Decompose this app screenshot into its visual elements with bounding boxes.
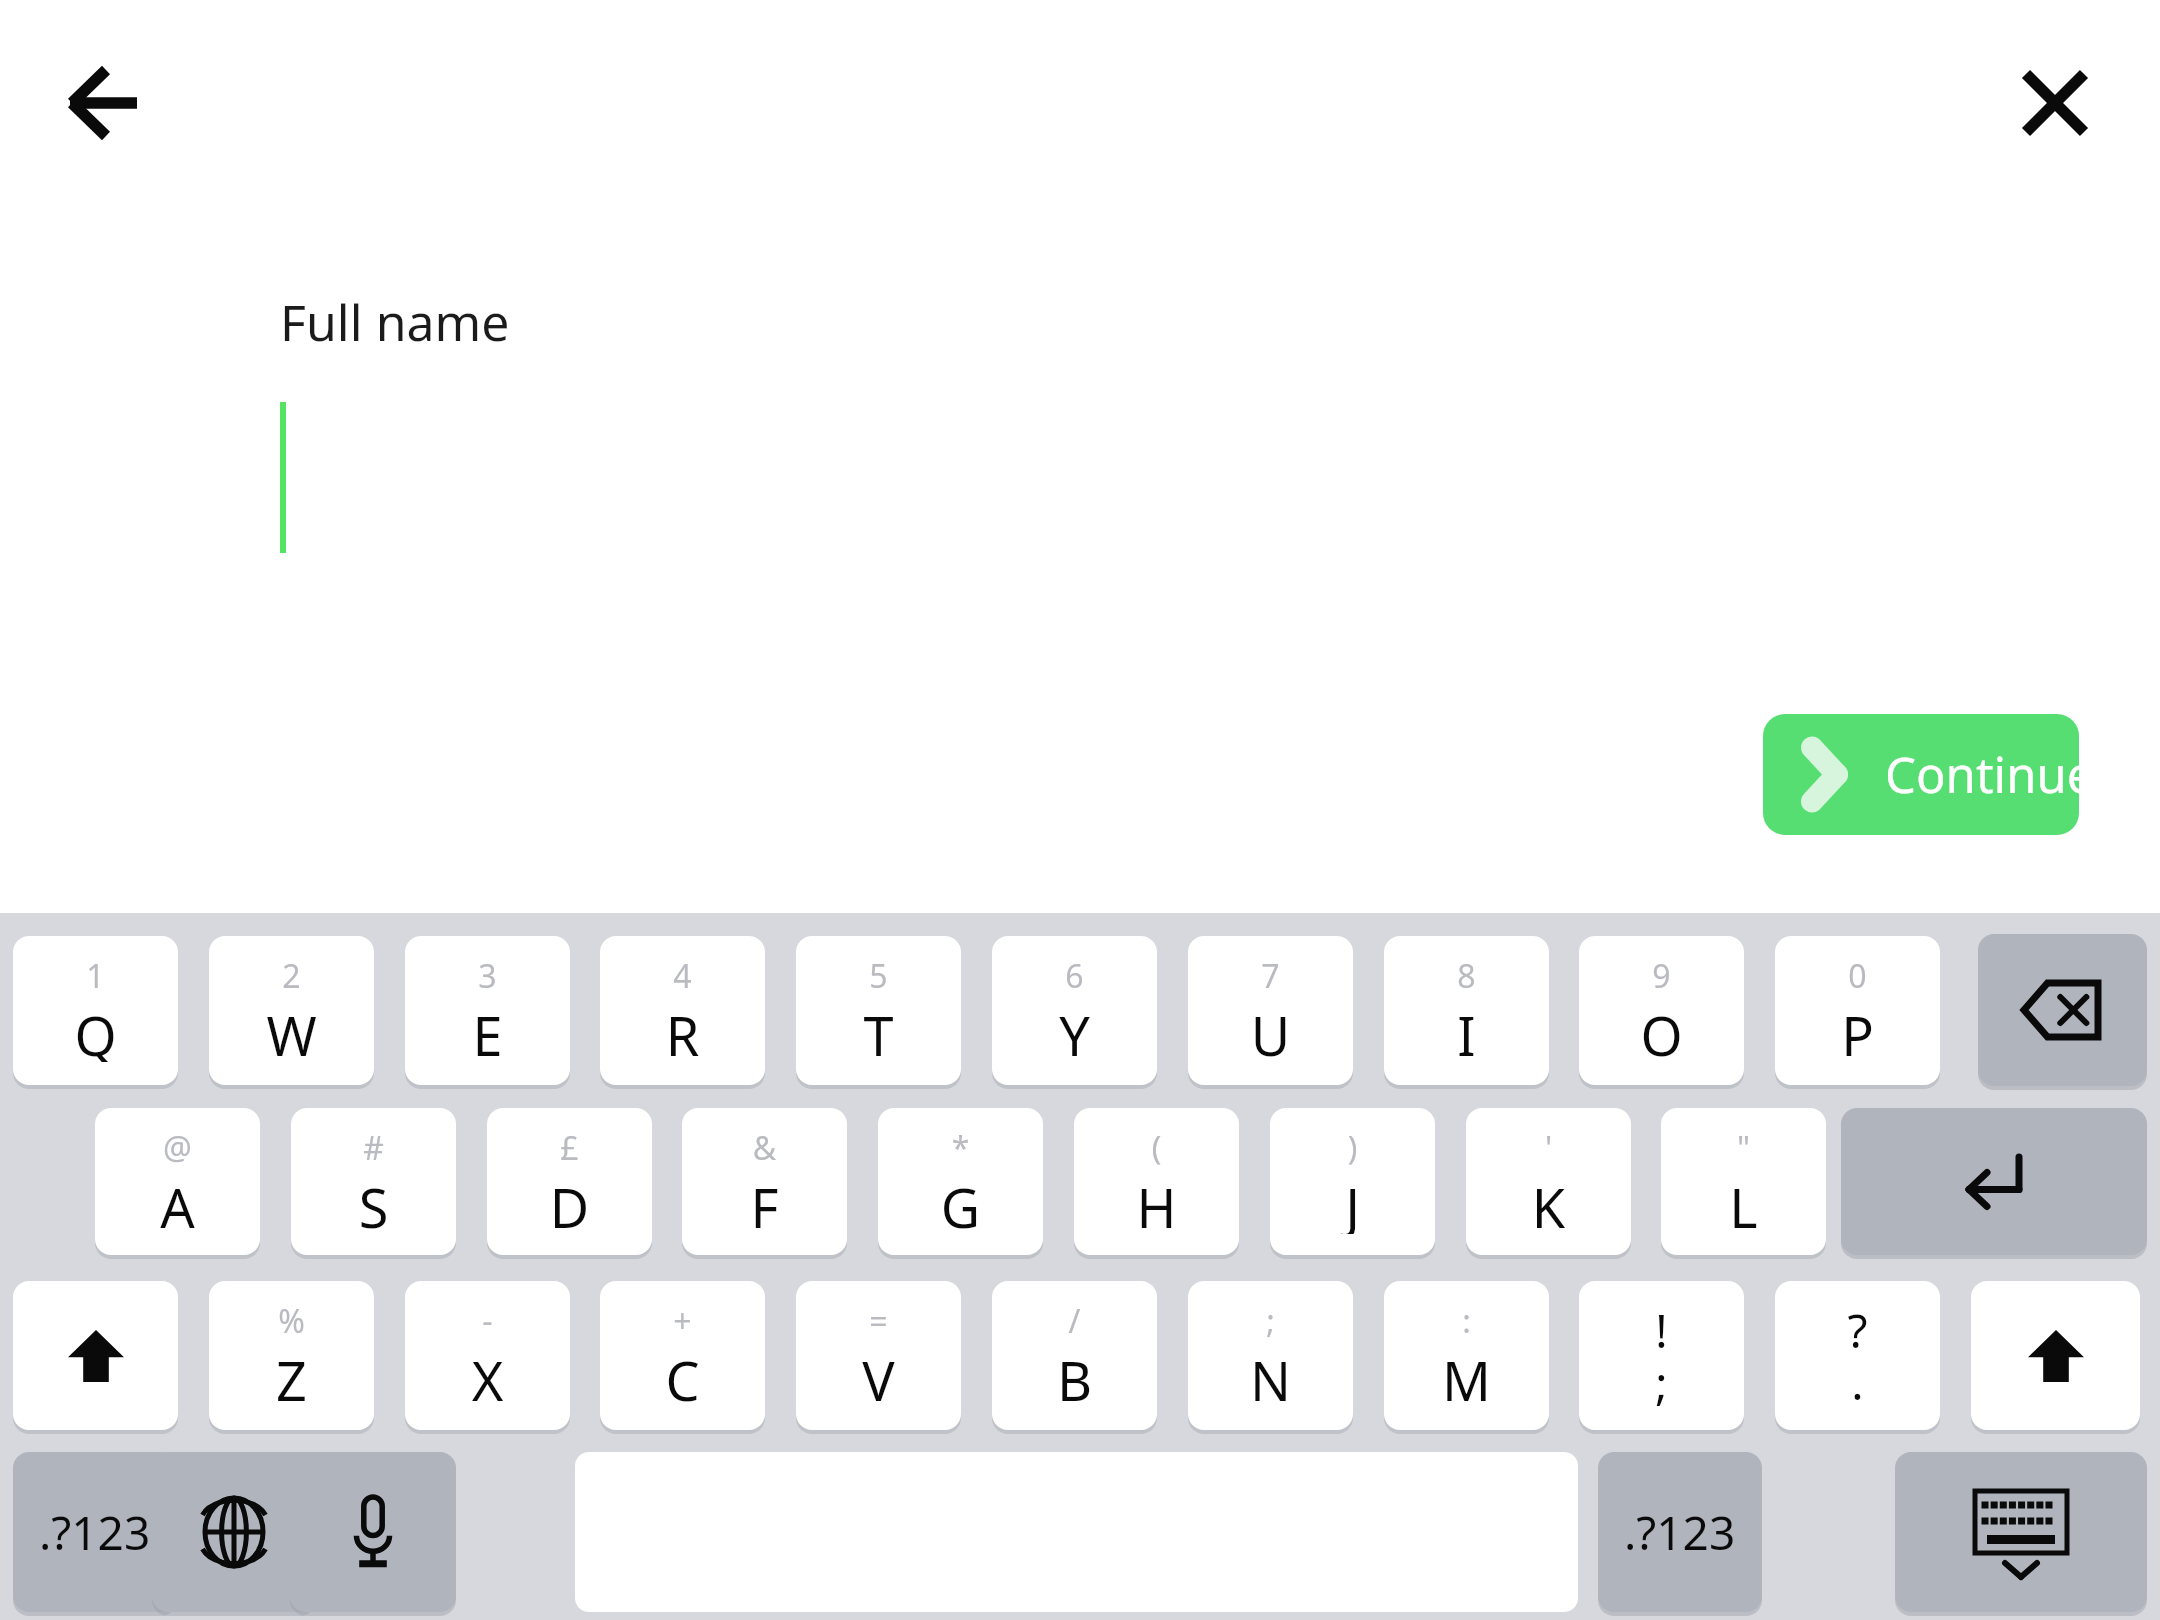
button[interactable]: * (878, 1108, 1043, 1255)
staticText: G (878, 1170, 1043, 1234)
staticText: ; (1579, 1351, 1744, 1407)
button[interactable]: Enter (1841, 1108, 2147, 1255)
button[interactable]: Language (152, 1452, 316, 1612)
button[interactable]: 1 (13, 936, 178, 1085)
staticText: 9 (1579, 954, 1744, 994)
staticText: C (600, 1343, 765, 1407)
staticText: = (796, 1299, 961, 1339)
staticText: .?123 (39, 1501, 151, 1564)
button[interactable]: & (682, 1108, 847, 1255)
staticText: @ (95, 1126, 260, 1166)
button[interactable]: : (1384, 1281, 1549, 1430)
button[interactable]: Symbols (13, 1452, 177, 1612)
staticText: " (1661, 1126, 1826, 1166)
button[interactable]: - (405, 1281, 570, 1430)
staticText: + (600, 1299, 765, 1339)
staticText: £ (487, 1126, 652, 1166)
staticText: A (95, 1170, 260, 1234)
staticText: Y (992, 998, 1157, 1062)
button[interactable]: ) (1270, 1108, 1435, 1255)
button[interactable]: Symbols (1598, 1452, 1762, 1612)
staticText: ; (1188, 1299, 1353, 1339)
staticText: S (291, 1170, 456, 1234)
staticText: ! (1579, 1299, 1744, 1355)
button[interactable]: / (992, 1281, 1157, 1430)
button[interactable]: Hide keyboard (1895, 1452, 2147, 1612)
button[interactable]: @ (95, 1108, 260, 1255)
staticText: .?123 (1624, 1501, 1736, 1564)
staticText: D (487, 1170, 652, 1234)
staticText: J (1270, 1170, 1435, 1234)
staticText: - (405, 1299, 570, 1339)
button[interactable]: 5 (796, 936, 961, 1085)
button[interactable]: Close (1987, 35, 2123, 171)
button[interactable]: 8 (1384, 936, 1549, 1085)
staticText: 7 (1188, 954, 1353, 994)
button[interactable]: ( (1074, 1108, 1239, 1255)
button[interactable]: % (209, 1281, 374, 1430)
staticText: P (1775, 998, 1940, 1062)
staticText: . (1775, 1351, 1940, 1407)
staticText: N (1188, 1343, 1353, 1407)
button[interactable]: 3 (405, 936, 570, 1085)
staticText: F (682, 1170, 847, 1234)
button[interactable]: ' (1466, 1108, 1631, 1255)
staticText: K (1466, 1170, 1631, 1234)
staticText: 0 (1775, 954, 1940, 994)
button[interactable]: Shift (1971, 1281, 2140, 1430)
staticText: Continue (1885, 741, 2079, 808)
button[interactable] (280, 380, 1880, 576)
staticText: B (992, 1343, 1157, 1407)
staticText: I (1384, 998, 1549, 1062)
staticText: V (796, 1343, 961, 1407)
button[interactable]: 9 (1579, 936, 1744, 1085)
button[interactable]: Shift (13, 1281, 178, 1430)
button[interactable]: # (291, 1108, 456, 1255)
button[interactable]: 6 (992, 936, 1157, 1085)
staticText: # (291, 1126, 456, 1166)
button[interactable]: = (796, 1281, 961, 1430)
button[interactable]: ; (1188, 1281, 1353, 1430)
button[interactable]: + (600, 1281, 765, 1430)
button[interactable]: Voice input (290, 1452, 456, 1612)
button[interactable]: 7 (1188, 936, 1353, 1085)
staticText: 8 (1384, 954, 1549, 994)
button[interactable]: " (1661, 1108, 1826, 1255)
staticText: ( (1074, 1126, 1239, 1166)
staticText: H (1074, 1170, 1239, 1234)
staticText: X (405, 1343, 570, 1407)
button[interactable]: Back (35, 35, 171, 171)
staticText: Q (13, 998, 178, 1062)
staticText: Full name (280, 288, 510, 356)
button[interactable]: Backspace (1978, 934, 2147, 1086)
staticText: ' (1466, 1126, 1631, 1166)
staticText: & (682, 1126, 847, 1166)
staticText: M (1384, 1343, 1549, 1407)
button[interactable]: ! (1579, 1281, 1744, 1430)
staticText: E (405, 998, 570, 1062)
staticText: 2 (209, 954, 374, 994)
staticText: 3 (405, 954, 570, 994)
staticText: * (878, 1126, 1043, 1166)
staticText: T (796, 998, 961, 1062)
staticText: % (209, 1299, 374, 1339)
button[interactable]: Continue (1763, 714, 2079, 835)
staticText: U (1188, 998, 1353, 1062)
staticText: 5 (796, 954, 961, 994)
button[interactable]: ? (1775, 1281, 1940, 1430)
staticText: 6 (992, 954, 1157, 994)
staticText: L (1661, 1170, 1826, 1234)
button[interactable]: 2 (209, 936, 374, 1085)
staticText: O (1579, 998, 1744, 1062)
staticText: : (1384, 1299, 1549, 1339)
staticText: Z (209, 1343, 374, 1407)
staticText: ? (1775, 1299, 1940, 1355)
button[interactable]: 0 (1775, 936, 1940, 1085)
button[interactable]: 4 (600, 936, 765, 1085)
staticText: W (209, 998, 374, 1062)
staticText: R (600, 998, 765, 1062)
staticText: ) (1270, 1126, 1435, 1166)
button[interactable]: £ (487, 1108, 652, 1255)
staticText: 4 (600, 954, 765, 994)
